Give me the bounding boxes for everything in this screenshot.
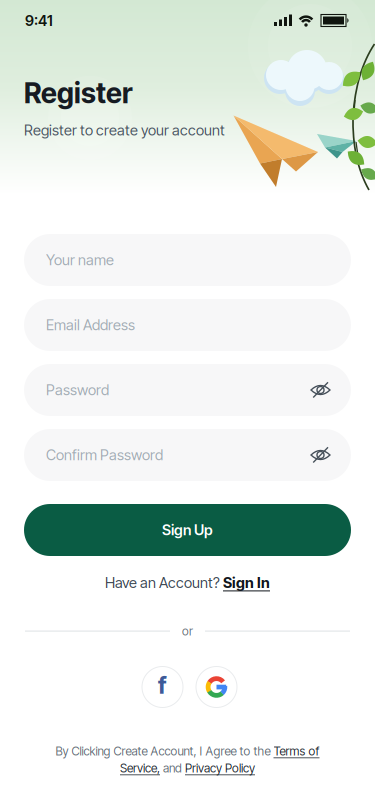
staticText: Confirm Password [46,446,163,464]
staticText: Password [46,381,109,399]
staticText: Your name [46,251,114,269]
staticText: Email Address [46,316,135,334]
staticText: Register [24,76,133,109]
button[interactable]: Sign In [223,574,270,591]
button[interactable]: Your name [24,234,351,286]
staticText: f [158,671,167,699]
button[interactable]: Confirm Password [24,429,351,481]
button[interactable]: Show password [310,379,331,400]
staticText: 9:41 [25,12,53,29]
button[interactable]: Show password [310,444,331,465]
staticText: and [160,761,185,775]
staticText: By Clicking Create Account, I Agree to t… [55,744,273,758]
button[interactable]: Email Address [24,299,351,351]
staticText: Have an Account? [105,574,223,591]
button[interactable]: Sign up with Facebook [141,666,183,708]
staticText: Sign Up [162,521,213,539]
staticText: or [182,624,193,638]
button[interactable]: Service, [120,761,160,775]
button[interactable]: Privacy Policy [185,761,255,775]
button[interactable]: Terms of [273,744,319,758]
staticText: Terms of [273,744,319,758]
button[interactable]: Sign Up [24,504,351,556]
staticText: Register to create your account [24,121,225,139]
staticText: Privacy Policy [185,761,255,775]
button[interactable]: Password [24,364,351,416]
staticText: Sign In [223,574,270,591]
staticText: Service, [120,761,160,775]
button[interactable]: Sign up with Google [195,666,237,708]
